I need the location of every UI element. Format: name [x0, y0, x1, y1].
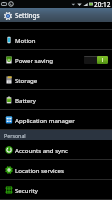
button[interactable]: Power saving toggle — [84, 56, 108, 64]
button[interactable]: Settings — [0, 8, 112, 22]
button[interactable]: Power saving — [0, 50, 112, 70]
button[interactable]: Location services — [0, 160, 112, 180]
button[interactable]: Security — [0, 180, 112, 200]
button[interactable]: Motion — [0, 30, 112, 50]
button[interactable]: Accounts and sync — [0, 140, 112, 160]
staticText: Power saving — [15, 56, 54, 64]
button[interactable]: Application manager — [0, 110, 112, 130]
button[interactable]: Storage — [0, 70, 112, 90]
staticText: Location services — [15, 166, 64, 174]
staticText: Settings — [15, 11, 40, 20]
staticText: Personal — [4, 132, 26, 139]
button[interactable]: Battery — [0, 90, 112, 110]
staticText: Security — [15, 186, 38, 194]
staticText: Motion — [15, 36, 36, 44]
staticText: 20:12 — [94, 0, 111, 8]
staticText: Storage — [15, 76, 38, 84]
staticText: Battery — [15, 96, 36, 104]
staticText: Application manager — [15, 116, 75, 124]
staticText: Accounts and sync — [15, 146, 68, 154]
